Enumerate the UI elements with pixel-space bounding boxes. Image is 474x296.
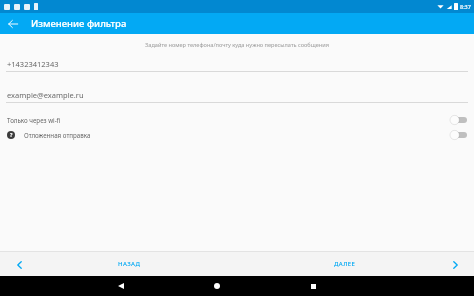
- staticText: Только через wi-fi: [7, 116, 61, 124]
- button[interactable]: Далее: [448, 258, 461, 271]
- staticText: ДАЛЕЕ: [334, 260, 356, 268]
- staticText: example@example.ru: [7, 90, 84, 100]
- button[interactable]: +14323412343: [0, 56, 474, 72]
- button[interactable]: Справка: [7, 131, 15, 139]
- button[interactable]: Главный экран: [209, 278, 225, 294]
- button[interactable]: Переключатель: [449, 114, 467, 126]
- staticText: Отложенная отправка: [24, 131, 91, 139]
- button[interactable]: Обзор: [305, 278, 321, 294]
- button[interactable]: Назад: [0, 252, 237, 276]
- button[interactable]: Только через wi-fi: [0, 112, 474, 127]
- button[interactable]: Назад: [13, 258, 26, 271]
- staticText: +14323412343: [7, 59, 59, 69]
- button[interactable]: Справка: [0, 127, 474, 142]
- button[interactable]: Назад: [113, 278, 129, 294]
- staticText: ?: [10, 132, 13, 139]
- staticText: Изменение фильтра: [31, 17, 127, 30]
- staticText: Задайте номер телефона/почту куда нужно …: [145, 41, 329, 49]
- button[interactable]: Назад: [4, 15, 22, 33]
- button[interactable]: example@example.ru: [0, 87, 474, 103]
- button[interactable]: ДАЛЕЕ: [237, 252, 474, 276]
- staticText: НАЗАД: [118, 260, 141, 268]
- button[interactable]: Переключатель: [449, 129, 467, 141]
- staticText: 8:37: [460, 3, 471, 10]
